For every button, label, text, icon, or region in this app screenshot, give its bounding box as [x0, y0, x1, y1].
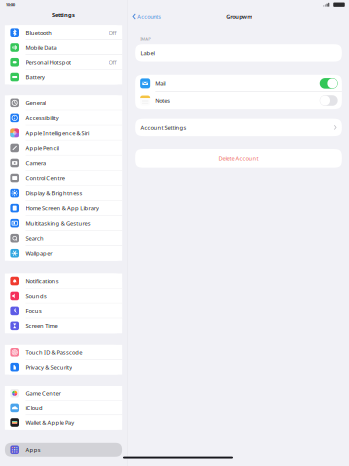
staticText: Multitasking & Gestures — [25, 219, 91, 227]
button[interactable]: Touch ID & Passcode — [5, 345, 122, 360]
staticText: Sounds — [25, 292, 47, 300]
staticText: Notes — [155, 97, 170, 104]
button[interactable]: Notifications — [5, 274, 122, 288]
staticText: Search — [25, 234, 44, 242]
staticText: Focus — [25, 307, 42, 315]
button[interactable]: Accessibility — [5, 110, 122, 125]
staticText: Wallpaper — [25, 249, 52, 257]
button[interactable]: iCloud — [5, 401, 122, 415]
button[interactable]: Wallpaper — [5, 246, 122, 261]
button[interactable]: Camera — [5, 155, 122, 170]
button[interactable]: Bluetooth — [5, 25, 122, 40]
button[interactable]: Search — [5, 231, 122, 246]
button[interactable]: Account Settings — [135, 119, 342, 136]
button[interactable]: Delete Account — [135, 149, 342, 168]
staticText: Off — [108, 58, 116, 66]
staticText: Home Screen & App Library — [25, 204, 99, 212]
button[interactable]: Notes — [135, 92, 342, 109]
button[interactable]: General — [5, 95, 122, 110]
button[interactable]: Apps — [5, 443, 122, 457]
staticText: Mobile Data — [25, 44, 56, 51]
button[interactable]: Battery — [5, 70, 122, 84]
staticText: Mail — [155, 80, 165, 87]
button[interactable]: Privacy & Security — [5, 360, 122, 374]
staticText: Bluetooth — [25, 29, 52, 36]
staticText: Personal Hotspot — [25, 58, 71, 66]
button[interactable]: Apple Intelligence & Siri — [5, 125, 122, 140]
button[interactable]: Game Center — [5, 386, 122, 401]
staticText: Notifications — [25, 277, 59, 285]
staticText: Camera — [25, 159, 46, 167]
staticText: Groupwm — [226, 13, 252, 20]
staticText: Delete Account — [218, 154, 258, 162]
button[interactable]: Multitasking & Gestures — [5, 216, 122, 231]
staticText: Account Settings — [140, 124, 186, 131]
staticText: Off — [108, 29, 116, 36]
button[interactable]: Display & Brightness — [5, 186, 122, 201]
staticText: Touch ID & Passcode — [25, 348, 82, 356]
staticText: 10:00 — [6, 2, 15, 8]
button[interactable]: Screen Time — [5, 318, 122, 333]
button[interactable]: Sounds — [5, 288, 122, 303]
button[interactable]: Mail — [135, 75, 342, 92]
button[interactable]: Control Centre — [5, 170, 122, 185]
staticText: Apple Intelligence & Siri — [25, 129, 89, 137]
button[interactable]: Personal Hotspot — [5, 55, 122, 70]
staticText: iCloud — [25, 404, 43, 412]
staticText: Game Center — [25, 389, 60, 397]
staticText: Apple Pencil — [25, 144, 58, 152]
button[interactable]: Apple Pencil — [5, 140, 122, 155]
staticText: IMAP — [140, 36, 151, 42]
staticText: General — [25, 99, 46, 107]
staticText: Settings — [52, 11, 75, 18]
button[interactable]: Home Screen & App Library — [5, 201, 122, 216]
button[interactable]: Mobile Data — [5, 40, 122, 55]
staticText: Accessibility — [25, 114, 59, 122]
staticText: Privacy & Security — [25, 363, 72, 371]
staticText: Battery — [25, 73, 45, 81]
button[interactable]: Accounts — [128, 9, 165, 24]
staticText: Wallet & Apple Pay — [25, 419, 74, 426]
staticText: Display & Brightness — [25, 189, 82, 197]
staticText: Accounts — [137, 13, 161, 20]
staticText: Control Centre — [25, 174, 65, 182]
staticText: Label — [140, 49, 154, 57]
staticText: Apps — [25, 446, 41, 454]
button[interactable]: Focus — [5, 303, 122, 318]
button[interactable]: Wallet & Apple Pay — [5, 415, 122, 430]
staticText: Screen Time — [25, 322, 57, 330]
